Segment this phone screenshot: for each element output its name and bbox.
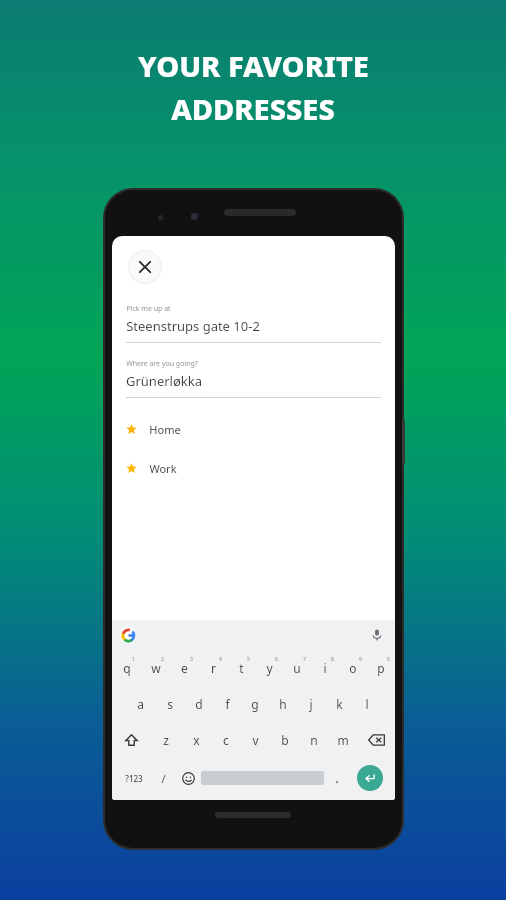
button[interactable]: l — [353, 686, 381, 722]
staticText: x — [193, 732, 200, 748]
staticText: Work — [149, 461, 177, 476]
staticText: k — [336, 696, 343, 712]
button[interactable]: ?123 — [116, 758, 151, 798]
staticText: Where are you going? — [126, 359, 198, 369]
staticText: 4 — [219, 656, 222, 663]
staticText: Steenstrups gate 10-2 — [126, 317, 260, 335]
staticText: n — [310, 732, 318, 748]
button[interactable]: Shift — [112, 722, 151, 758]
staticText: t — [239, 660, 244, 676]
staticText: 5 — [247, 656, 250, 663]
staticText: u — [293, 660, 301, 676]
button[interactable]: q — [112, 650, 141, 686]
staticText: i — [323, 660, 327, 676]
staticText: e — [181, 660, 188, 676]
staticText: v — [252, 732, 259, 748]
button[interactable]: Google — [120, 627, 136, 643]
button[interactable]: z — [151, 722, 181, 758]
staticText: 8 — [331, 656, 334, 663]
staticText: d — [195, 696, 203, 712]
button[interactable]: e — [170, 650, 199, 686]
staticText: 0 — [387, 656, 390, 663]
staticText: 6 — [275, 656, 278, 663]
staticText: a — [137, 696, 144, 712]
button[interactable]: s — [155, 686, 184, 722]
button[interactable]: x — [181, 722, 211, 758]
button[interactable]: i — [311, 650, 339, 686]
button[interactable]: w — [141, 650, 170, 686]
button[interactable]: f — [213, 686, 241, 722]
staticText: c — [223, 732, 229, 748]
button[interactable]: y — [255, 650, 283, 686]
button[interactable]: Work — [112, 459, 395, 478]
button[interactable]: a — [126, 686, 155, 722]
staticText: Pick me up at — [126, 304, 171, 314]
button[interactable]: t — [227, 650, 255, 686]
button[interactable]: m — [328, 722, 357, 758]
staticText: j — [309, 696, 313, 712]
staticText: r — [211, 660, 216, 676]
staticText: YOUR FAVORITE — [138, 46, 369, 85]
staticText: . — [335, 771, 339, 786]
button[interactable]: c — [211, 722, 241, 758]
staticText: m — [337, 732, 349, 748]
button[interactable]: . — [324, 758, 349, 798]
button[interactable]: r — [199, 650, 227, 686]
button[interactable]: Pick me up at — [112, 304, 395, 343]
staticText: b — [281, 732, 289, 748]
button[interactable]: Close — [128, 250, 162, 284]
staticText: z — [163, 732, 169, 748]
button[interactable]: o — [339, 650, 367, 686]
button[interactable]: n — [299, 722, 328, 758]
staticText: f — [225, 696, 230, 712]
button[interactable]: Emoji — [176, 758, 201, 798]
button[interactable]: h — [269, 686, 297, 722]
button[interactable]: Home — [112, 420, 395, 439]
staticText: 2 — [161, 656, 164, 663]
button[interactable]: g — [241, 686, 269, 722]
button[interactable]: / — [151, 758, 176, 798]
staticText: Grünerløkka — [126, 372, 202, 390]
button[interactable]: p — [367, 650, 395, 686]
staticText: ADDRESSES — [171, 89, 335, 128]
staticText: Home — [149, 422, 181, 437]
button[interactable]: Voice input — [369, 627, 385, 643]
button[interactable]: k — [325, 686, 353, 722]
button[interactable]: u — [283, 650, 311, 686]
staticText: q — [123, 660, 131, 676]
staticText: ?123 — [125, 773, 143, 784]
staticText: 3 — [190, 656, 193, 663]
button[interactable]: v — [241, 722, 270, 758]
staticText: h — [279, 696, 287, 712]
button[interactable]: Backspace — [357, 722, 395, 758]
staticText: g — [251, 696, 259, 712]
staticText: 9 — [359, 656, 362, 663]
staticText: o — [349, 660, 357, 676]
button[interactable]: Enter — [349, 758, 391, 798]
staticText: / — [161, 771, 166, 786]
staticText: s — [167, 696, 173, 712]
staticText: 1 — [132, 656, 135, 663]
button[interactable]: b — [270, 722, 299, 758]
staticText: w — [151, 660, 161, 676]
button[interactable]: d — [184, 686, 213, 722]
staticText: 7 — [303, 656, 306, 663]
staticText: l — [365, 696, 369, 712]
staticText: p — [377, 660, 385, 676]
button[interactable]: Where are you going? — [112, 359, 395, 398]
button[interactable]: j — [297, 686, 325, 722]
staticText: y — [266, 660, 273, 676]
